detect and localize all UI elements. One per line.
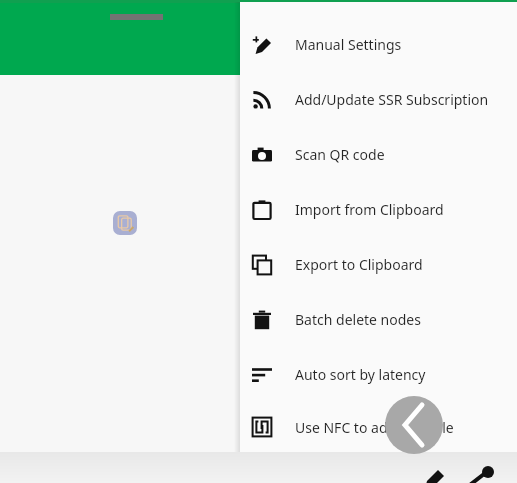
staticText: Import from Clipboard bbox=[295, 200, 444, 219]
button[interactable]: Add/Update SSR Subscription bbox=[240, 72, 517, 127]
button[interactable]: Export to Clipboard bbox=[240, 237, 517, 292]
staticText: Scan QR code bbox=[295, 145, 385, 164]
button[interactable]: Import from Clipboard bbox=[240, 182, 517, 237]
button[interactable]: Batch delete nodes bbox=[240, 292, 517, 347]
button[interactable]: Manual Settings bbox=[240, 17, 517, 72]
staticText: Batch delete nodes bbox=[295, 310, 421, 329]
staticText: Auto sort by latency bbox=[295, 365, 426, 384]
staticText: Use NFC to add a profile bbox=[295, 418, 454, 437]
staticText: Export to Clipboard bbox=[295, 255, 423, 274]
staticText: Add/Update SSR Subscription bbox=[295, 90, 489, 109]
button[interactable]: Auto sort by latency bbox=[240, 347, 517, 402]
button[interactable]: Scan QR code bbox=[240, 127, 517, 182]
staticText: Manual Settings bbox=[295, 35, 402, 54]
button[interactable]: Back bbox=[385, 396, 443, 454]
button[interactable]: Use NFC to add a profile bbox=[240, 402, 517, 452]
